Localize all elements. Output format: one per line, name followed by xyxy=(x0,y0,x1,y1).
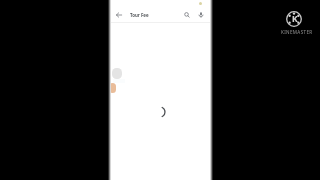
button[interactable]: Back xyxy=(112,8,126,22)
button[interactable]: Voice search xyxy=(194,8,207,21)
button[interactable]: Search xyxy=(180,8,193,21)
staticText: K xyxy=(292,13,298,25)
staticText: Tour Fee xyxy=(130,12,149,18)
staticText: KINEMASTER xyxy=(281,29,313,35)
